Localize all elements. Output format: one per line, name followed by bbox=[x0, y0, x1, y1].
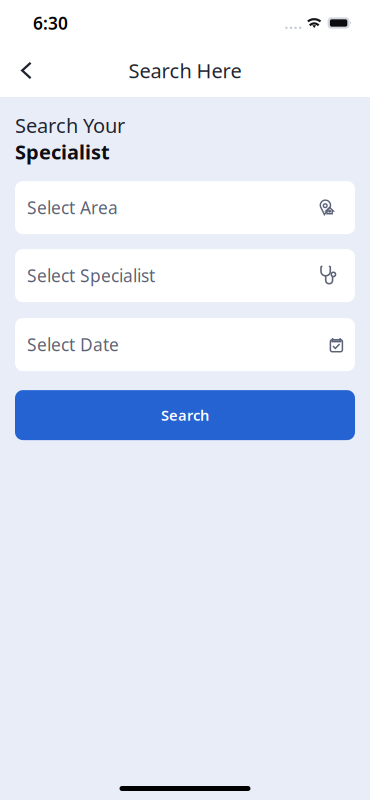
button[interactable]: Select Specialist bbox=[15, 249, 355, 302]
staticText: Search bbox=[161, 405, 209, 425]
staticText: 6:30 bbox=[33, 11, 68, 34]
staticText: Search Here bbox=[128, 57, 241, 84]
button[interactable]: Search bbox=[15, 390, 355, 440]
staticText: Search Your bbox=[15, 112, 125, 139]
staticText: Specialist bbox=[15, 139, 110, 165]
staticText: Select Area bbox=[27, 196, 118, 219]
staticText: Select Date bbox=[27, 333, 119, 356]
staticText: Select Specialist bbox=[27, 264, 155, 287]
button[interactable]: Select Area bbox=[15, 181, 355, 234]
button[interactable]: Back bbox=[0, 49, 50, 92]
button[interactable]: Select Date bbox=[15, 318, 355, 371]
